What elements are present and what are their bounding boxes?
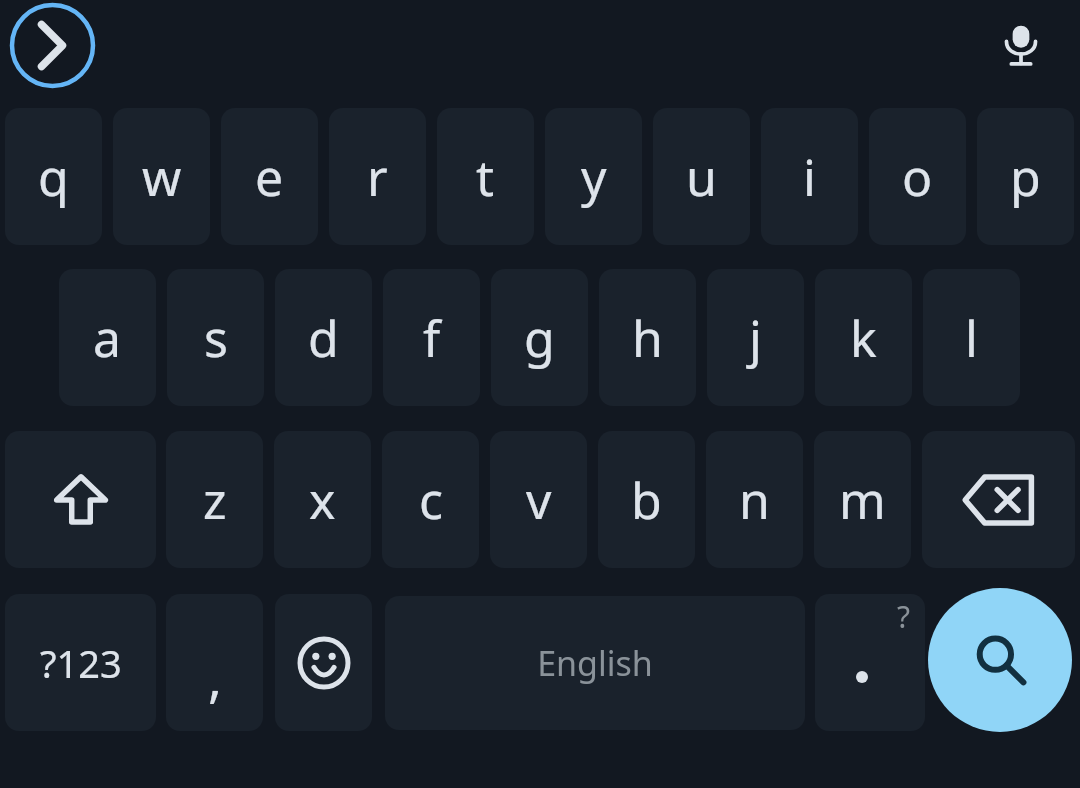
staticText: i — [803, 143, 816, 211]
button[interactable]: d — [275, 269, 372, 406]
button[interactable]: Expand suggestions — [9, 2, 96, 89]
staticText: k — [850, 304, 877, 372]
button[interactable]: a — [59, 269, 156, 406]
staticText: v — [526, 466, 552, 534]
staticText: r — [367, 143, 388, 211]
button[interactable]: t — [437, 108, 534, 245]
staticText: a — [93, 304, 122, 372]
staticText: u — [686, 143, 717, 211]
staticText: j — [749, 304, 762, 372]
staticText: English — [537, 640, 653, 686]
button[interactable]: b — [598, 431, 695, 568]
button[interactable]: , — [166, 594, 263, 731]
staticText: y — [581, 143, 607, 211]
staticText: f — [423, 304, 441, 372]
button[interactable]: Backspace — [922, 431, 1075, 568]
button[interactable]: English — [385, 596, 805, 730]
staticText: z — [203, 466, 227, 534]
staticText: p — [1010, 143, 1041, 211]
button[interactable]: n — [706, 431, 803, 568]
staticText: q — [38, 143, 69, 211]
button[interactable]: g — [491, 269, 588, 406]
staticText: d — [308, 304, 339, 372]
staticText: , — [208, 641, 222, 712]
button[interactable]: s — [167, 269, 264, 406]
button[interactable]: q — [5, 108, 102, 245]
button[interactable]: r — [329, 108, 426, 245]
button[interactable]: w — [113, 108, 210, 245]
button[interactable]: k — [815, 269, 912, 406]
staticText: ?123 — [40, 637, 122, 689]
button[interactable]: y — [545, 108, 642, 245]
button[interactable]: u — [653, 108, 750, 245]
button[interactable]: h — [599, 269, 696, 406]
staticText: n — [739, 466, 770, 534]
button[interactable]: ?123 — [5, 594, 156, 731]
staticText: ? — [897, 596, 911, 637]
button[interactable]: l — [923, 269, 1020, 406]
button[interactable]: Period — [815, 594, 925, 731]
staticText: l — [965, 304, 978, 372]
button[interactable]: e — [221, 108, 318, 245]
button[interactable]: z — [166, 431, 263, 568]
button[interactable]: i — [761, 108, 858, 245]
button[interactable]: Search — [928, 588, 1072, 732]
button[interactable]: f — [383, 269, 480, 406]
staticText: m — [839, 466, 886, 534]
staticText: b — [631, 466, 662, 534]
staticText: c — [419, 466, 443, 534]
button[interactable]: o — [869, 108, 966, 245]
staticText: t — [476, 143, 495, 211]
button[interactable]: j — [707, 269, 804, 406]
button[interactable]: x — [274, 431, 371, 568]
button[interactable]: v — [490, 431, 587, 568]
staticText: o — [902, 143, 933, 211]
staticText: h — [632, 304, 663, 372]
button[interactable]: p — [977, 108, 1074, 245]
staticText: e — [255, 143, 284, 211]
button[interactable]: Voice input — [983, 7, 1059, 83]
staticText: x — [309, 466, 336, 534]
staticText: w — [142, 143, 182, 211]
staticText: g — [524, 304, 555, 372]
button[interactable]: Shift — [5, 431, 156, 568]
button[interactable]: Emoji — [275, 594, 372, 731]
button[interactable]: c — [382, 431, 479, 568]
button[interactable]: m — [814, 431, 911, 568]
staticText: s — [204, 304, 228, 372]
